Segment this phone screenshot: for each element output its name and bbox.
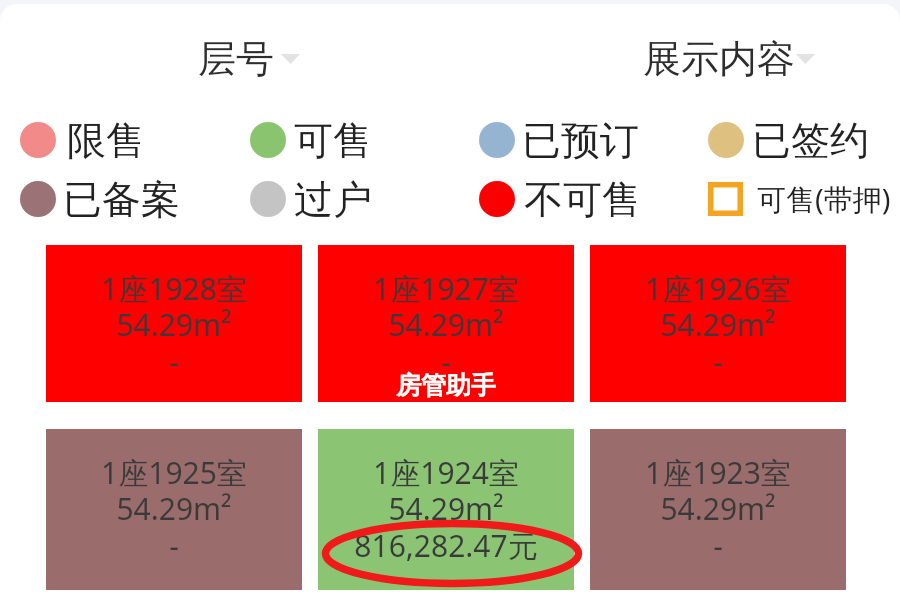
staticText: 不可售 [524, 175, 641, 224]
staticText: 54.29m² [318, 488, 574, 529]
staticText: 1座1923室 [590, 452, 846, 493]
button[interactable]: 层号 [198, 16, 300, 102]
other: 可售(带押) [708, 182, 743, 216]
button[interactable]: 1座1928室 [46, 245, 302, 402]
button[interactable]: 可售(带押) [708, 173, 890, 225]
button[interactable]: 已备案 [20, 173, 188, 225]
button[interactable]: 已预订 [479, 114, 647, 166]
staticText: - [46, 341, 302, 382]
button[interactable]: 不可售 [479, 173, 649, 225]
staticText: - [318, 341, 574, 382]
staticText: 可售(带押) [757, 179, 891, 219]
staticText: 过户 [294, 175, 372, 224]
button[interactable]: 1座1927室 [318, 245, 574, 402]
staticText: 已签约 [752, 116, 869, 165]
staticText: 54.29m² [46, 304, 302, 345]
staticText: 1座1924室 [318, 452, 574, 493]
button[interactable]: 1座1926室 [590, 245, 846, 402]
staticText: - [590, 341, 846, 382]
staticText: - [46, 525, 302, 566]
staticText: 1座1925室 [46, 452, 302, 493]
staticText: 816,282.47元 [318, 525, 574, 566]
staticText: 展示内容 [643, 35, 795, 83]
staticText: 可售 [294, 116, 372, 165]
staticText: 房管助手 [396, 370, 496, 401]
staticText: 限售 [67, 116, 145, 165]
staticText: 54.29m² [318, 304, 574, 345]
button[interactable]: 展示内容 [643, 16, 815, 102]
staticText: 1座1926室 [590, 268, 846, 309]
staticText: 1座1928室 [46, 268, 302, 309]
button[interactable]: 已签约 [708, 114, 877, 166]
staticText: 1座1927室 [318, 268, 574, 309]
button[interactable]: 过户 [250, 173, 419, 225]
button[interactable]: 1座1924室 [318, 429, 574, 590]
button[interactable]: 限售 [20, 114, 192, 166]
staticText: 已备案 [63, 175, 180, 224]
staticText: 层号 [198, 35, 274, 83]
staticText: 54.29m² [590, 304, 846, 345]
staticText: 54.29m² [46, 488, 302, 529]
staticText: 54.29m² [590, 488, 846, 529]
staticText: 已预订 [522, 116, 639, 165]
button[interactable]: 可售 [250, 114, 419, 166]
button[interactable]: 1座1925室 [46, 429, 302, 590]
staticText: - [590, 525, 846, 566]
button[interactable]: 1座1923室 [590, 429, 846, 590]
